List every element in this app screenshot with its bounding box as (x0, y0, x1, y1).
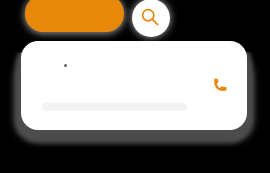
button[interactable]: Search (132, 0, 170, 37)
button[interactable]: Add (25, 0, 124, 32)
button[interactable]: Call (205, 69, 235, 99)
button[interactable]: Call (21, 41, 247, 130)
